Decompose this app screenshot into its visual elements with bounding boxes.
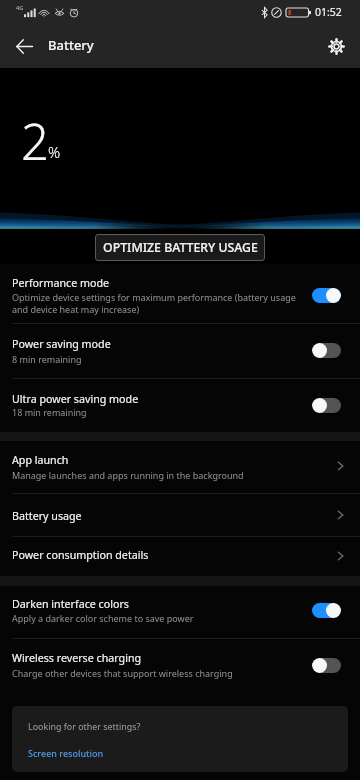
button[interactable]: Toggle on (312, 603, 341, 618)
staticText: App launch (12, 453, 69, 468)
staticText: OPTIMIZE BATTERY USAGE (103, 239, 258, 256)
staticText: Screen resolution (28, 747, 104, 759)
staticText: 4G (16, 4, 24, 11)
button[interactable]: OPTIMIZE BATTERY USAGE (95, 234, 265, 261)
staticText: Optimize device settings for maximum per… (12, 291, 304, 316)
button[interactable] (0, 638, 360, 691)
staticText: Power saving mode (12, 337, 111, 352)
staticText: Ultra power saving mode (12, 392, 139, 407)
staticText: Apply a darker color scheme to save powe… (12, 612, 292, 624)
staticText: 8 min remaining (12, 353, 212, 365)
staticText: Darken interface colors (12, 597, 129, 612)
button[interactable] (0, 264, 360, 323)
staticText: Wireless reverse charging (12, 651, 142, 666)
staticText: % (48, 142, 61, 162)
staticText: Power consumption details (12, 548, 149, 563)
staticText: Battery usage (12, 509, 82, 524)
button[interactable]: Looking for other settings? (12, 706, 348, 772)
staticText: 18 min remaining (12, 406, 212, 418)
button[interactable] (0, 378, 360, 432)
button[interactable] (0, 493, 360, 536)
button[interactable] (0, 441, 360, 493)
staticText: 2 (21, 108, 49, 175)
button[interactable] (0, 586, 360, 638)
button[interactable] (0, 323, 360, 378)
staticText: Manage launches and apps running in the … (12, 469, 292, 481)
staticText: Performance mode (12, 276, 110, 291)
button[interactable]: Toggle off (312, 398, 341, 413)
staticText: Charge other devices that support wirele… (12, 667, 292, 679)
button[interactable]: Settings (314, 24, 358, 68)
staticText: Battery (48, 36, 94, 54)
button[interactable]: Toggle on (312, 288, 341, 303)
button[interactable] (0, 536, 360, 576)
button[interactable]: Toggle off (312, 343, 341, 358)
staticText: 01:52 (315, 5, 342, 19)
button[interactable]: Toggle off (312, 658, 341, 673)
staticText: Looking for other settings? (28, 720, 141, 732)
button[interactable]: Back (2, 24, 46, 68)
